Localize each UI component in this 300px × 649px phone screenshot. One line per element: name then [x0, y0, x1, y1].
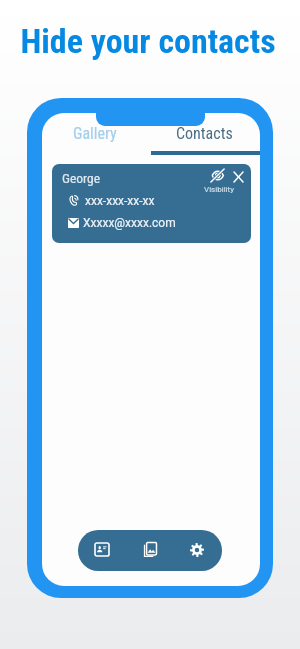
button[interactable]: Contacts	[78, 530, 126, 571]
staticText: Xxxxx@xxxx.com	[83, 216, 176, 230]
staticText: Hide your contacts	[20, 21, 276, 61]
staticText: Contacts	[176, 124, 233, 143]
staticText: Visibility	[202, 185, 236, 194]
button[interactable]: Contacts	[150, 118, 259, 148]
staticText: xxx-xxx-xx-xx	[85, 194, 155, 208]
button[interactable]: Close	[229, 168, 247, 186]
button[interactable]: George	[52, 164, 251, 243]
button[interactable]: Gallery	[126, 530, 174, 571]
staticText: George	[62, 170, 101, 186]
button[interactable]: Toggle visibility	[202, 165, 236, 194]
button[interactable]: Settings	[174, 530, 222, 571]
button[interactable]: Gallery	[42, 118, 149, 148]
staticText: Gallery	[73, 124, 117, 143]
